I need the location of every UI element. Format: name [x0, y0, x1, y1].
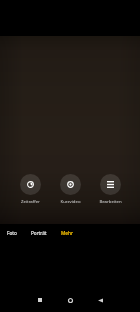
button[interactable]: Recent apps — [28, 288, 52, 312]
staticText: Mehr — [61, 230, 73, 236]
staticText: Foto — [7, 230, 17, 236]
button[interactable]: Home — [58, 288, 82, 312]
staticText: Bearbeiten — [99, 198, 122, 204]
staticText: Zeitraffer — [21, 198, 40, 204]
staticText: Porträt — [31, 230, 47, 236]
staticText: Kurzvideo — [60, 198, 81, 204]
button[interactable]: Bearbeiten — [90, 174, 130, 204]
button[interactable]: Back — [88, 288, 112, 312]
button[interactable]: Porträt — [24, 227, 54, 239]
button[interactable]: Mehr — [54, 227, 80, 239]
button[interactable]: Foto — [0, 227, 24, 239]
button[interactable]: Kurzvideo — [50, 174, 90, 204]
button[interactable]: Zeitraffer — [10, 174, 50, 204]
